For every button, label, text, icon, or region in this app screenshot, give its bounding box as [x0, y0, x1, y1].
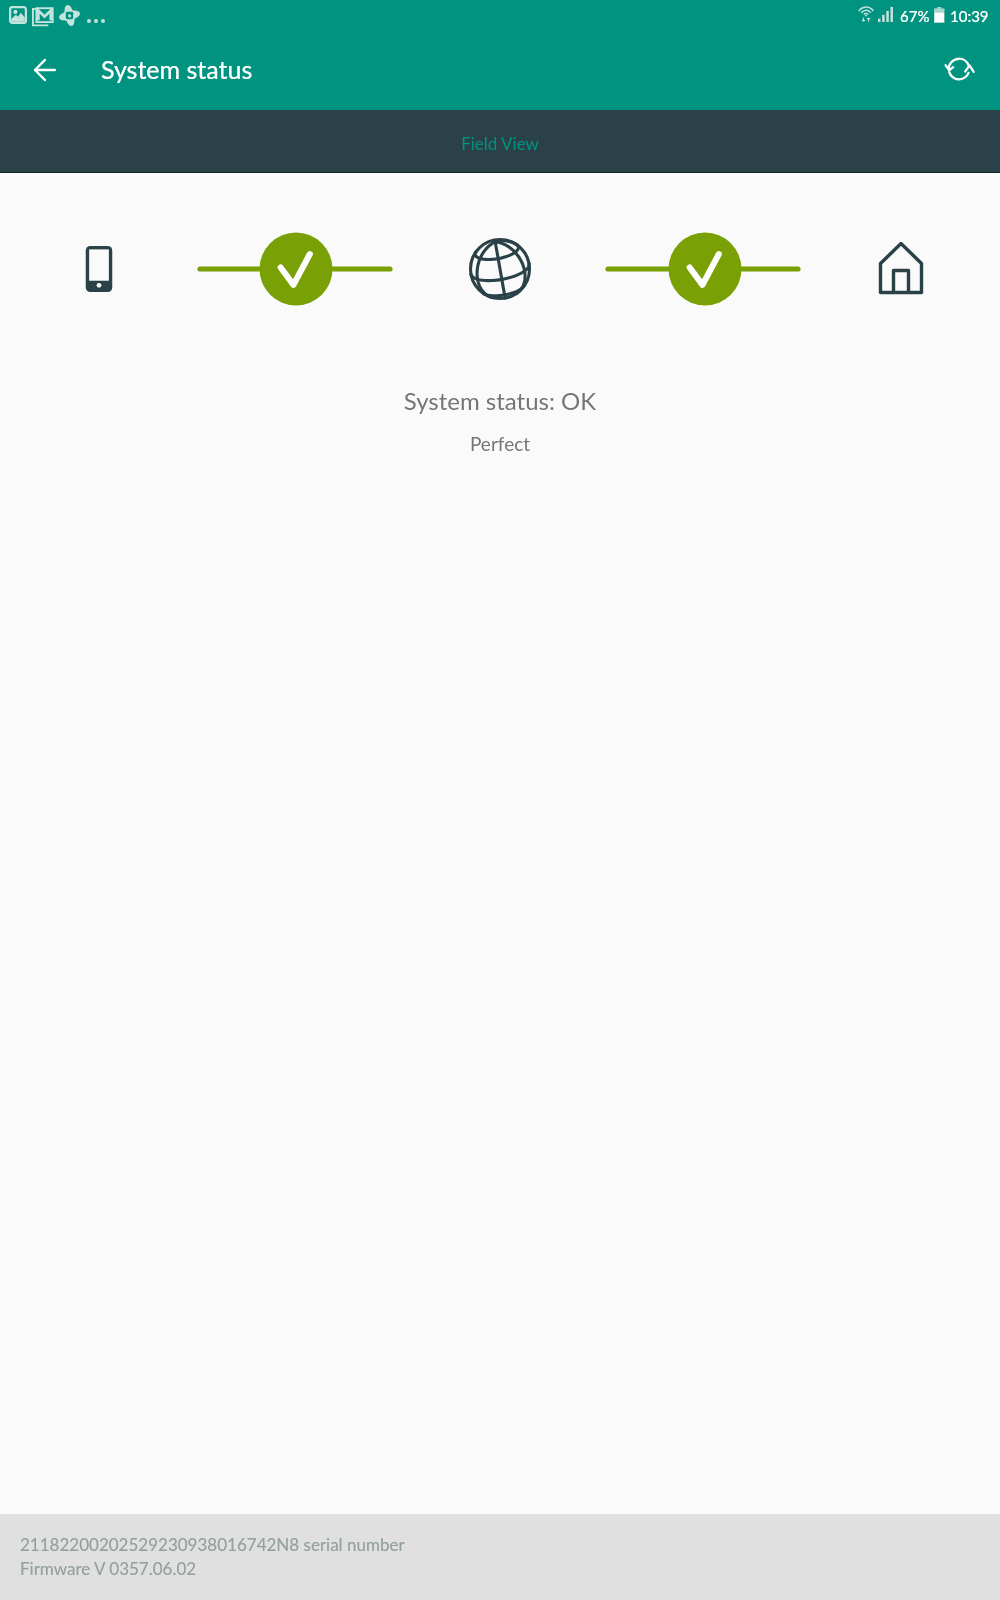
button[interactable]: Field View	[0, 110, 1000, 172]
staticText: Firmware V 0357.06.02	[20, 1558, 197, 1578]
staticText: 10:39	[950, 7, 989, 25]
staticText: 67%	[900, 7, 930, 25]
staticText: Field View	[0, 133, 1000, 153]
staticText: System status: OK	[0, 386, 1000, 415]
staticText: 21182200202529230938016742N8 serial numb…	[20, 1534, 405, 1554]
button[interactable]: Navigate back	[19, 44, 71, 96]
button[interactable]: Refresh	[933, 43, 985, 95]
staticText: Perfect	[0, 432, 1000, 455]
staticText: System status	[101, 54, 253, 84]
